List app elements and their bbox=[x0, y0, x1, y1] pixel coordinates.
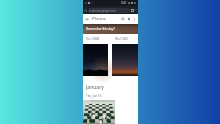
button[interactable]: More options bbox=[133, 18, 136, 21]
staticText: Photos bbox=[92, 16, 106, 22]
button[interactable]: Tabs bbox=[131, 9, 134, 12]
staticText: Wed 7AM bbox=[115, 37, 128, 41]
button[interactable]: Menu bbox=[85, 17, 89, 21]
staticText: January bbox=[86, 84, 104, 91]
staticText: Remember this day? bbox=[86, 27, 115, 31]
button[interactable]: photos.google.com bbox=[88, 8, 130, 13]
button[interactable]: Wed 7AM bbox=[112, 37, 138, 76]
staticText: Thu 10AM bbox=[86, 37, 100, 41]
button[interactable]: Remember this day? bbox=[83, 24, 138, 34]
button[interactable]: Thu 10AM bbox=[83, 37, 108, 76]
button[interactable]: Account bbox=[127, 17, 131, 21]
staticText: 9:41 bbox=[121, 1, 127, 5]
button[interactable] bbox=[83, 100, 115, 124]
button[interactable]: Search bbox=[121, 17, 125, 21]
staticText: photos.google.com bbox=[92, 9, 116, 13]
staticText: Thu, Jan 16 bbox=[86, 94, 102, 98]
button[interactable]: Home bbox=[84, 9, 87, 12]
